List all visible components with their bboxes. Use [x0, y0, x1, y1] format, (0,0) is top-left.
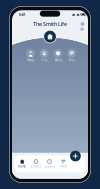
button[interactable]: Chores — [29, 158, 43, 169]
button[interactable]: Settings — [80, 21, 85, 27]
button[interactable]: Add — [70, 150, 81, 162]
staticText: Routine — [44, 165, 56, 168]
staticText: Pets — [41, 58, 47, 62]
button[interactable]: Docs — [57, 158, 70, 169]
staticText: Home — [18, 165, 26, 168]
staticText: Chores — [31, 165, 41, 168]
staticText: Files — [69, 58, 75, 62]
staticText: Family — [27, 58, 34, 62]
button[interactable]: Routine — [43, 158, 56, 169]
staticText: Docs — [60, 164, 66, 168]
button[interactable]: Home — [15, 158, 29, 169]
button[interactable]: Pets — [37, 49, 51, 62]
button[interactable]: Profile — [79, 26, 85, 32]
button[interactable]: Files — [65, 49, 78, 62]
staticText: Safety — [54, 58, 61, 62]
staticText: 9:41 — [18, 12, 25, 17]
button[interactable]: Safety — [51, 49, 65, 62]
staticText: The Smith Life — [33, 20, 67, 27]
button[interactable]: Family — [24, 49, 37, 62]
